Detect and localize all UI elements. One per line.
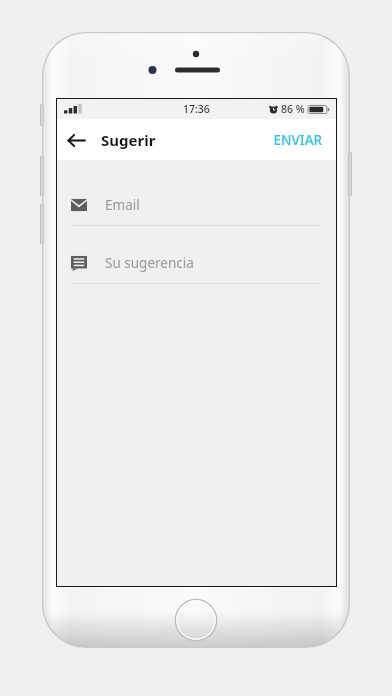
button[interactable]: Back [57,121,95,159]
staticText: Su sugerencia [105,254,194,272]
button[interactable]: Email [57,194,336,226]
staticText: ENVIAR [273,131,322,149]
staticText: 17:36 [183,102,210,116]
staticText: 86 % [281,102,305,116]
staticText: Sugerir [101,130,156,150]
button[interactable]: Su sugerencia [57,252,336,284]
button[interactable]: ENVIAR [259,119,336,160]
staticText: Email [105,196,140,214]
